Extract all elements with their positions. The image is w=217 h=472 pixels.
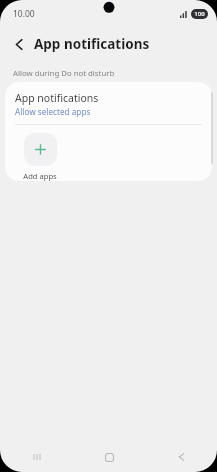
button[interactable]: Allow selected apps bbox=[15, 106, 91, 117]
staticText: Allow during Do not disturb bbox=[13, 68, 115, 79]
button[interactable]: Back bbox=[6, 31, 32, 57]
staticText: Allow selected apps bbox=[15, 106, 91, 117]
staticText: App notifications bbox=[34, 35, 150, 53]
staticText: App notifications bbox=[15, 91, 99, 105]
button[interactable]: Add apps bbox=[17, 133, 63, 181]
button[interactable]: Recents bbox=[0, 442, 73, 472]
staticText: 100 bbox=[194, 10, 205, 18]
staticText: 10.00 bbox=[13, 8, 35, 20]
button[interactable]: Back bbox=[145, 442, 217, 472]
staticText: Add apps bbox=[23, 171, 57, 181]
button[interactable]: Home bbox=[73, 442, 145, 472]
